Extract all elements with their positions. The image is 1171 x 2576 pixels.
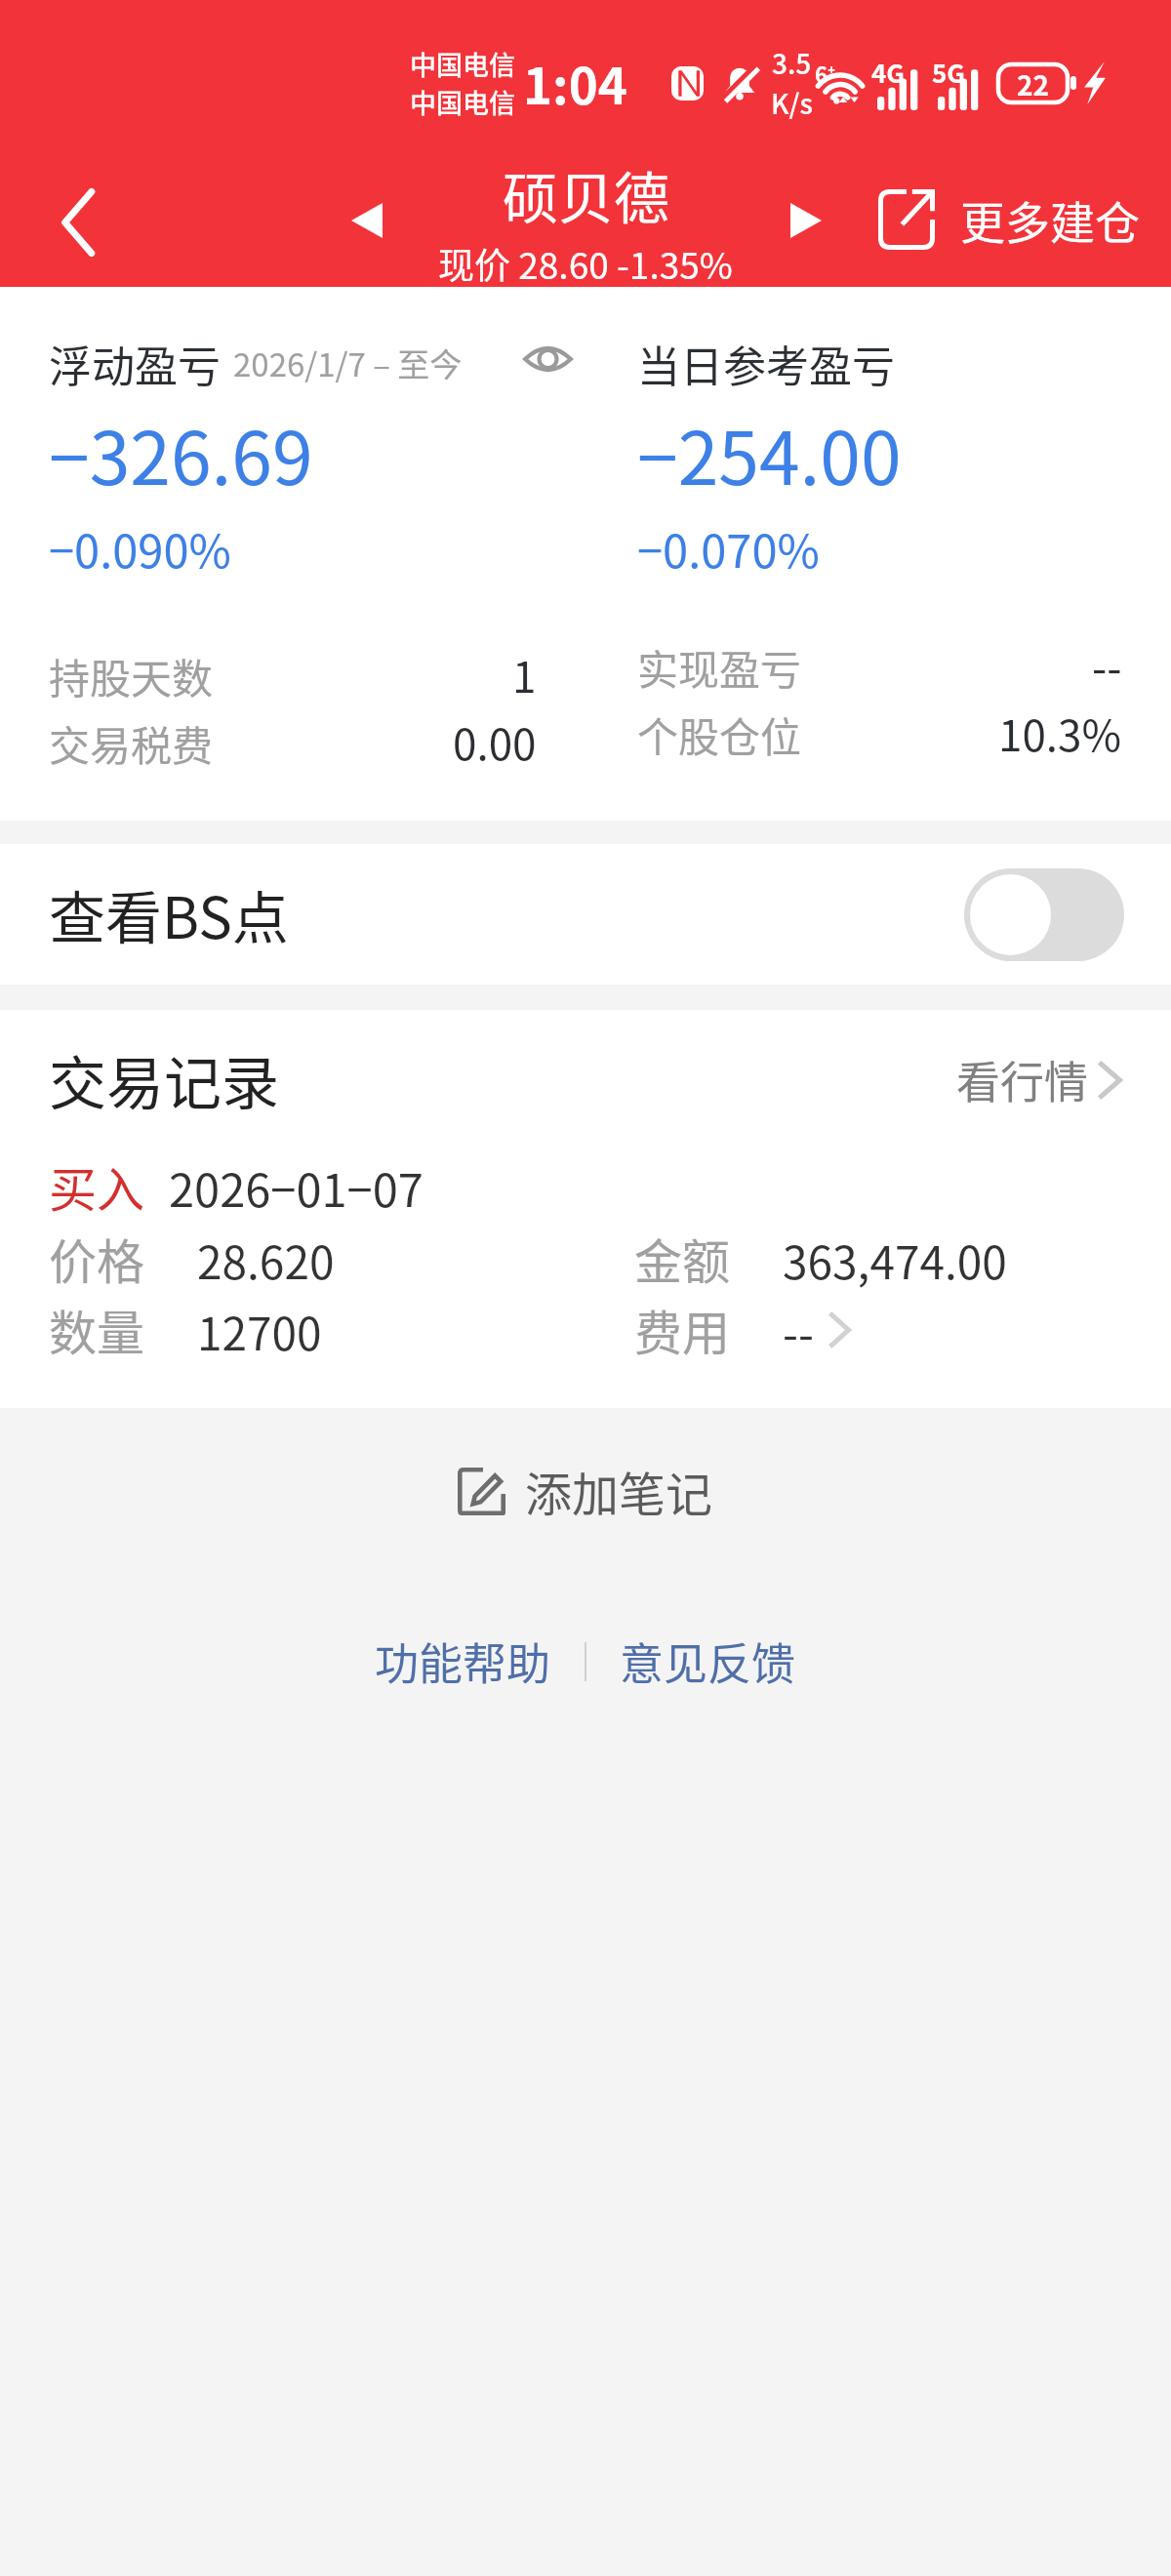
button[interactable]: 查看BS点 — [0, 844, 1171, 985]
staticText: 28.620 — [197, 1228, 335, 1293]
staticText: 功能帮助 — [375, 1630, 551, 1693]
staticText: 中国电信 — [410, 45, 515, 83]
staticText: 价格 — [49, 1224, 145, 1293]
staticText: 10.3% — [998, 702, 1122, 764]
staticText: 12700 — [197, 1299, 322, 1364]
staticText: -- — [783, 1299, 814, 1364]
button[interactable]: 看行情 — [956, 1048, 1122, 1111]
staticText: 交易记录 — [49, 1038, 280, 1121]
staticText: 看行情 — [956, 1048, 1089, 1111]
button[interactable]: Previous stock — [318, 172, 416, 269]
button[interactable]: 意见反馈 — [612, 1622, 804, 1701]
staticText: 费用 — [634, 1295, 731, 1364]
staticText: 持股天数 — [49, 646, 214, 705]
staticText: 2026/1/7 – 至今 — [233, 340, 463, 386]
staticText: 22 — [1017, 64, 1050, 102]
staticText: 交易税费 — [49, 713, 214, 773]
button[interactable]: 功能帮助 — [367, 1622, 559, 1701]
button[interactable]: Back — [20, 164, 138, 281]
staticText: 数量 — [49, 1295, 145, 1364]
staticText: 添加笔记 — [525, 1457, 713, 1525]
staticText: 硕贝德 — [503, 154, 669, 235]
staticText: 363,474.00 — [783, 1228, 1007, 1293]
button[interactable]: 添加笔记 — [0, 1457, 1171, 1525]
staticText: 2026−01−07 — [169, 1153, 424, 1220]
staticText: 中国电信 — [410, 83, 515, 121]
staticText: −0.090% — [49, 514, 231, 581]
staticText: 4G — [871, 54, 905, 91]
staticText: −326.69 — [49, 400, 313, 506]
staticText: 6⁺ — [815, 58, 835, 89]
button[interactable]: 更多建仓 — [878, 174, 1140, 265]
staticText: 实现盈亏 — [637, 637, 802, 697]
staticText: 更多建仓 — [960, 187, 1140, 253]
staticText: 个股仓位 — [637, 704, 802, 764]
staticText: −254.00 — [637, 400, 902, 506]
staticText: 意见反馈 — [620, 1630, 796, 1693]
staticText: 1 — [512, 643, 537, 705]
staticText: 当日参考盈亏 — [637, 333, 895, 393]
staticText: -- — [1092, 634, 1122, 697]
staticText: −0.070% — [637, 514, 820, 581]
staticText: 3.5 — [772, 43, 812, 83]
staticText: 查看BS点 — [49, 873, 289, 955]
staticText: 浮动盈亏 — [49, 333, 221, 393]
button[interactable]: Next stock — [757, 172, 855, 269]
staticText: 买入 — [49, 1151, 145, 1221]
staticText: 1:04 — [523, 47, 627, 119]
staticText: 金额 — [634, 1224, 731, 1293]
staticText: K/s — [771, 83, 813, 123]
staticText: 5G — [932, 54, 965, 91]
staticText: 0.00 — [453, 710, 537, 773]
staticText: 现价 28.60 -1.35% — [438, 237, 733, 290]
